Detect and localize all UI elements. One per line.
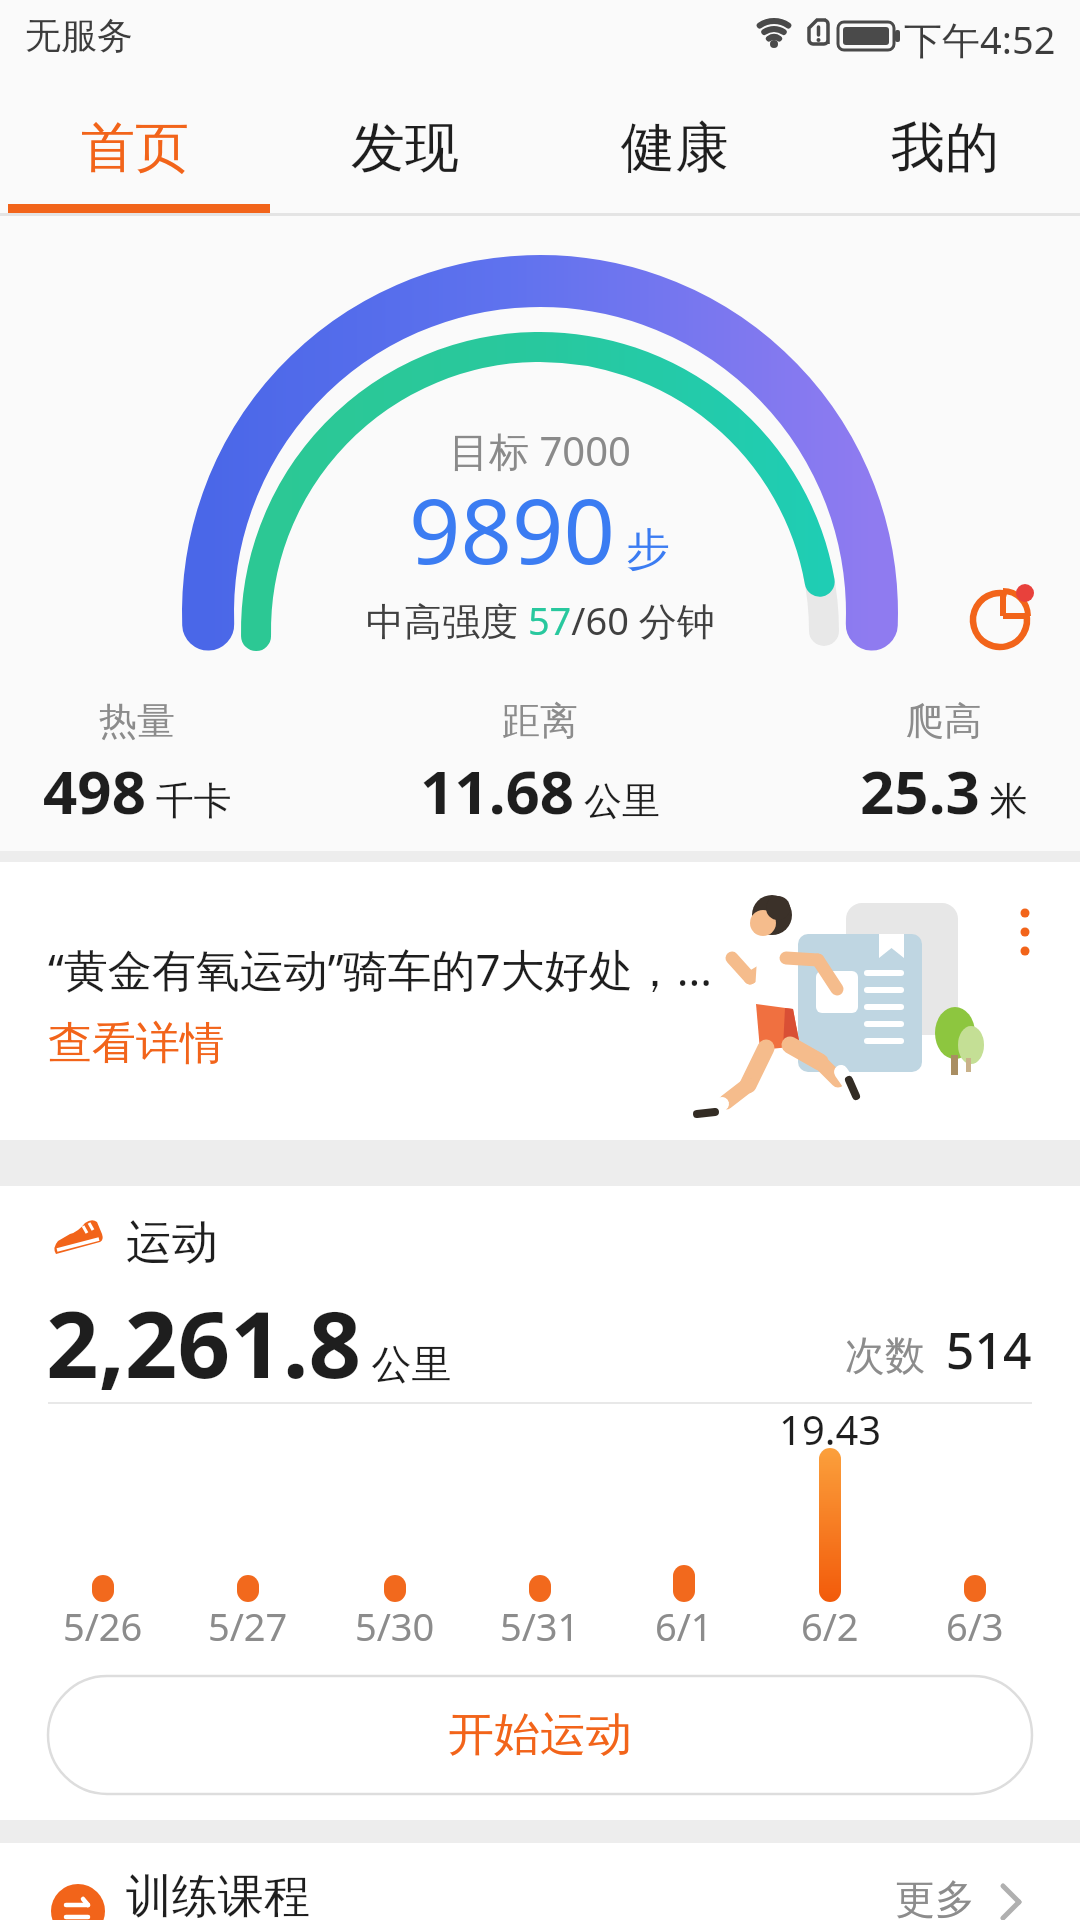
staticText: 9890 步 [409,468,671,588]
staticText: 训练课程 [126,1868,310,1920]
staticText: 25.3 米 [860,750,1028,832]
button[interactable] [0,866,1080,1140]
staticText: 首页 [81,114,189,182]
staticText: 6/1 [655,1600,713,1652]
staticText: “黄金有氧运动”骑车的7大好处，... [48,939,768,999]
staticText: 11.68 公里 [420,750,661,832]
staticText: 无服务 [25,13,133,58]
staticText: 2,261.8 公里 [46,1280,452,1405]
staticText: 健康 [621,114,729,182]
staticText: 目标 7000 [449,423,631,478]
button[interactable]: 查看详情 [48,1016,224,1071]
button[interactable] [960,580,1050,670]
staticText: 下午4:52 [904,13,1056,65]
button[interactable]: 更多 [860,1862,1040,1920]
staticText: 更多 [895,1874,975,1920]
staticText: 5/30 [355,1600,435,1652]
staticText: 距离 [502,697,578,745]
staticText: 19.43 [779,1402,882,1456]
button[interactable] [995,885,1055,975]
staticText: 5/31 [500,1600,580,1652]
staticText: 中高强度 57/60 分钟 [366,594,715,646]
button[interactable]: 发现 [270,92,540,204]
button[interactable] [0,1843,1080,1920]
staticText: 我的 [891,114,999,182]
staticText: 498 千卡 [43,750,232,832]
button[interactable]: 首页 [0,92,270,204]
staticText: 查看详情 [48,1016,224,1071]
staticText: 5/27 [208,1600,288,1652]
button[interactable]: 开始运动 [48,1676,1032,1794]
button[interactable]: 健康 [540,92,810,204]
staticText: 6/3 [946,1600,1004,1652]
staticText: 运动 [126,1214,218,1272]
staticText: 开始运动 [448,1706,632,1764]
staticText: 次数 514 [845,1316,1032,1384]
button[interactable]: 我的 [810,92,1080,204]
staticText: 爬高 [906,697,982,745]
staticText: 发现 [351,114,459,182]
staticText: 热量 [99,697,175,745]
staticText: 5/26 [63,1600,143,1652]
staticText: 6/2 [801,1600,859,1652]
